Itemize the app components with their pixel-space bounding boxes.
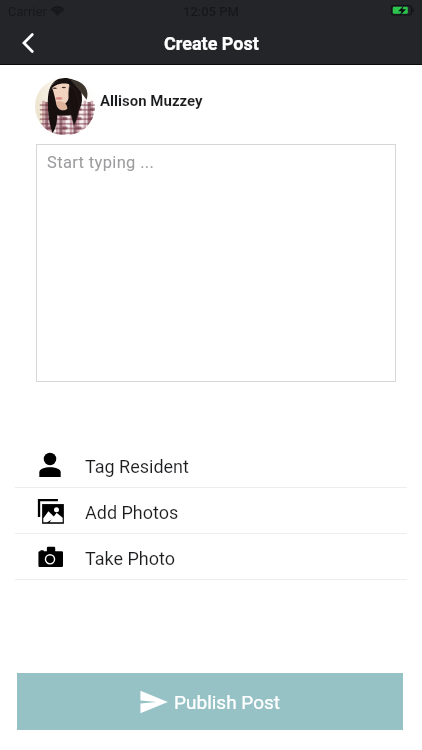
staticText: Tag Resident [85, 456, 189, 477]
staticText: Create Post [164, 33, 259, 54]
button[interactable]: Take Photo [0, 534, 422, 579]
staticText: Allison Muzzey [100, 92, 203, 110]
staticText: Publish Post [174, 691, 281, 713]
button[interactable]: Tag Resident [0, 442, 422, 487]
staticText: Carrier [8, 4, 47, 19]
staticText: Start typing ... [47, 153, 155, 172]
staticText: Take Photo [85, 548, 176, 569]
staticText: Add Photos [85, 502, 179, 523]
button[interactable]: Back [8, 23, 48, 63]
button[interactable]: Add Photos [0, 488, 422, 533]
staticText: 12:05 PM [183, 4, 239, 19]
button[interactable]: Publish Post [17, 673, 403, 730]
